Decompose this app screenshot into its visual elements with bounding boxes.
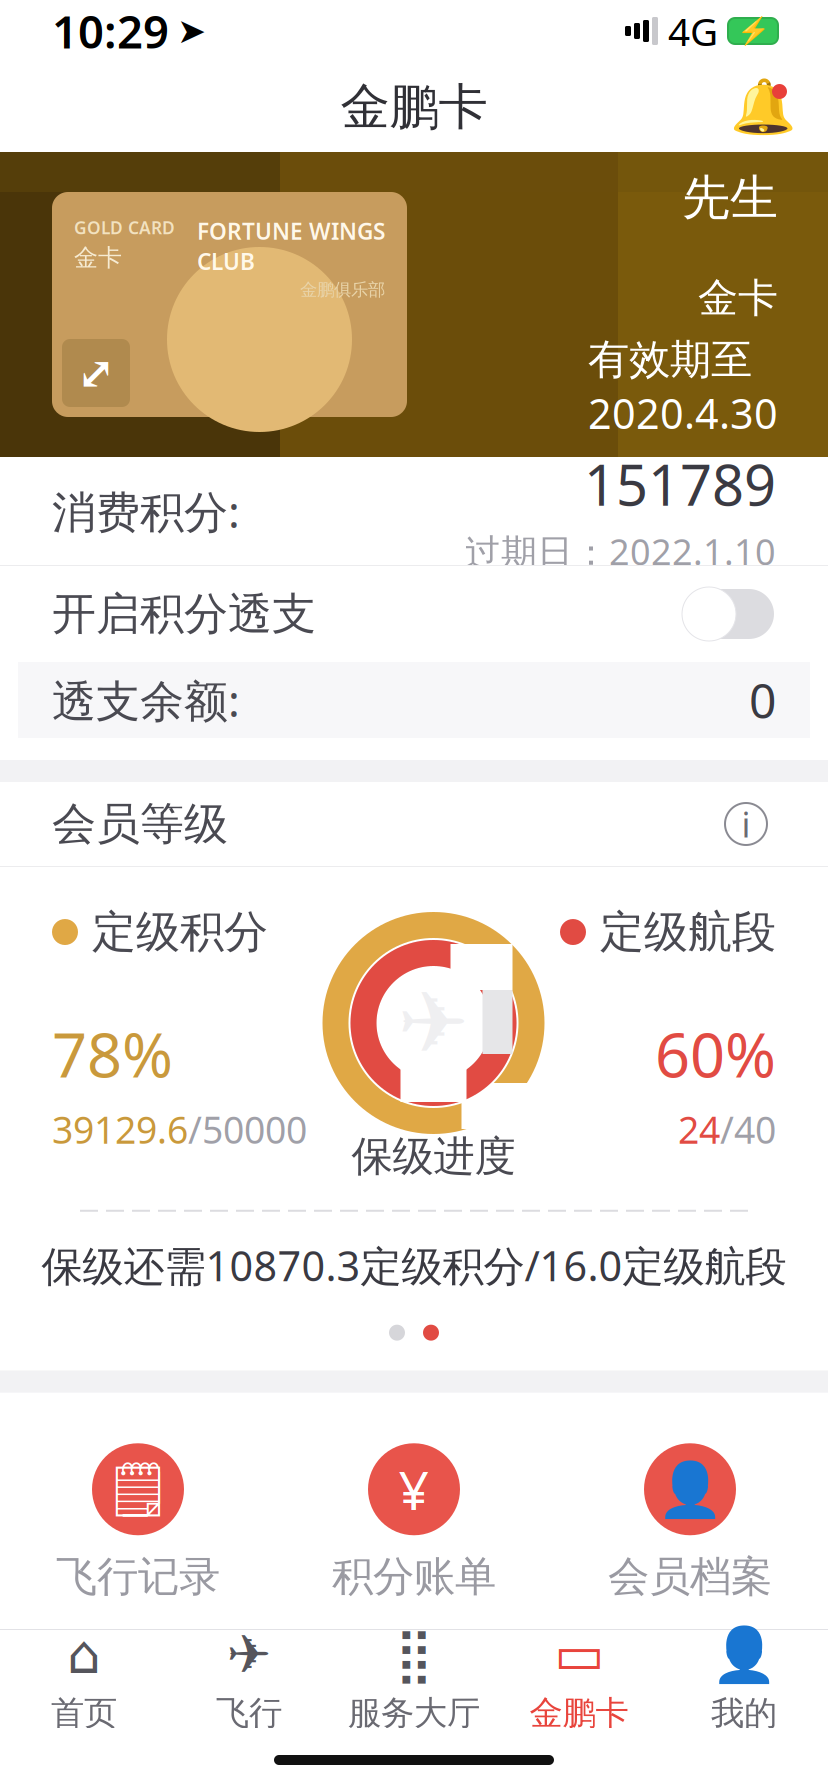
staticText: ⣿ — [394, 1624, 433, 1685]
staticText: 金卡 — [698, 273, 778, 323]
staticText: /40 — [720, 1104, 776, 1154]
staticText: 🗒 — [104, 1459, 172, 1520]
staticText: FORTUNE WINGS CLUB — [197, 216, 385, 276]
staticText: ➤ — [177, 11, 206, 51]
staticText: ♥ — [114, 1657, 162, 1717]
staticText: 保级进度 — [351, 1131, 515, 1182]
button[interactable]: 🗒 — [0, 1437, 276, 1609]
button[interactable]: 开启积分透支 — [0, 566, 828, 662]
button[interactable]: 通知 — [728, 72, 798, 142]
button[interactable]: ✈ — [166, 1630, 331, 1728]
staticText: 积分补登 — [332, 1749, 496, 1792]
button[interactable]: 说明 — [716, 794, 776, 854]
staticText: 60% — [655, 1013, 776, 1094]
staticText: GOLD CARD — [74, 216, 175, 239]
button[interactable]: ⣿ — [331, 1630, 496, 1728]
staticText: 过期日：2022.1.10 — [465, 527, 776, 575]
staticText: 定级积分 — [92, 905, 268, 959]
staticText: 4G — [668, 5, 718, 57]
button[interactable]: ▭ — [496, 1630, 661, 1728]
button[interactable]: ¥ — [276, 1437, 552, 1609]
staticText: ✈ — [226, 1624, 271, 1685]
button[interactable]: 👤 — [661, 1630, 826, 1728]
staticText: ⚡ — [736, 16, 769, 46]
staticText: 10:29 — [52, 1, 169, 61]
staticText: 24 — [678, 1104, 720, 1154]
staticText: 39129.6 — [52, 1104, 188, 1154]
staticText: 金鹏卡 — [529, 1693, 628, 1734]
staticText: 透支余额: — [52, 671, 240, 729]
staticText: 会员档案 — [608, 1551, 772, 1602]
button[interactable]: ⌂ — [1, 1630, 166, 1728]
staticText: 保级还需10870.3定级积分/16.0定级航段 — [41, 1238, 786, 1293]
staticText: 78% — [52, 1013, 173, 1094]
staticText: 首页 — [51, 1693, 117, 1734]
staticText: 0 — [749, 668, 776, 732]
staticText: ▭ — [554, 1624, 604, 1685]
staticText: ⤢ — [77, 347, 115, 399]
staticText: 我的 — [711, 1693, 777, 1734]
staticText: 📕 — [657, 1657, 723, 1718]
staticText: 飞行记录 — [56, 1551, 220, 1602]
staticText: 151789 — [584, 447, 776, 521]
button[interactable]: ♥ — [0, 1635, 276, 1792]
button[interactable]: + — [276, 1635, 552, 1792]
staticText: 先生 — [682, 169, 778, 228]
button[interactable]: 📕 — [552, 1635, 828, 1792]
staticText: + — [398, 1652, 429, 1723]
staticText: 金卡 — [74, 243, 122, 272]
button[interactable]: 👤 — [552, 1437, 828, 1609]
staticText: 👤 — [657, 1459, 723, 1520]
staticText: ⌂ — [67, 1624, 101, 1685]
staticText: 积分账单 — [332, 1551, 496, 1602]
staticText: i — [741, 801, 750, 847]
staticText: 服务大厅 — [348, 1693, 480, 1734]
staticText: 金鹏俱乐部 — [300, 279, 385, 300]
staticText: 会员等级 — [52, 797, 228, 851]
staticText: ✈ — [397, 975, 469, 1071]
staticText: 金鹏卡 — [340, 77, 487, 137]
staticText: 有效期至 2020.4.30 — [588, 331, 778, 440]
staticText: 定级航段 — [600, 905, 776, 959]
staticText: ¥ — [398, 1454, 429, 1525]
staticText: 开启积分透支 — [52, 587, 316, 641]
staticText: 👤 — [711, 1624, 777, 1685]
button[interactable]: 会员卡 — [52, 192, 407, 417]
staticText: 飞行 — [216, 1693, 282, 1734]
staticText: 🔔 — [730, 76, 796, 137]
staticText: /50000 — [188, 1104, 307, 1154]
staticText: 消费积分: — [52, 482, 240, 540]
